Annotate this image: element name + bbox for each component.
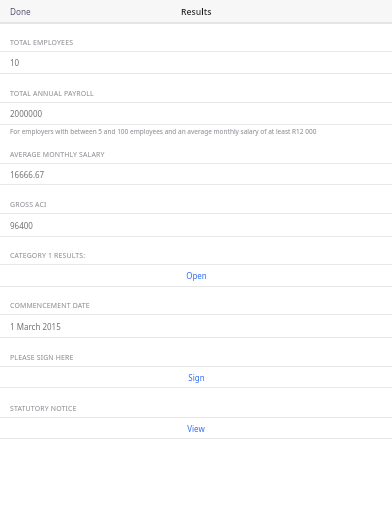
staticText: AVERAGE MONTHLY SALARY <box>10 150 105 159</box>
button[interactable]: Open <box>0 265 392 286</box>
staticText: TOTAL ANNUAL PAYROLL <box>10 89 94 98</box>
staticText: Results <box>181 6 212 18</box>
button[interactable]: View <box>0 418 392 438</box>
staticText: 1 March 2015 <box>10 321 61 332</box>
button[interactable]: 10 <box>0 52 392 73</box>
staticText: Open <box>186 270 207 281</box>
staticText: TOTAL EMPLOYEES <box>10 38 74 47</box>
staticText: CATEGORY 1 RESULTS: <box>10 251 86 260</box>
button[interactable]: Done <box>0 0 39 22</box>
button[interactable]: Sign <box>0 367 392 387</box>
staticText: 96400 <box>10 220 33 231</box>
button[interactable]: 96400 <box>0 214 392 236</box>
staticText: For employers with between 5 and 100 emp… <box>10 127 317 136</box>
staticText: 2000000 <box>10 108 43 119</box>
button[interactable]: 2000000 <box>0 103 392 124</box>
button[interactable]: 16666.67 <box>0 164 392 184</box>
staticText: COMMENCEMENT DATE <box>10 301 90 310</box>
staticText: Done <box>10 6 31 17</box>
staticText: View <box>187 423 205 434</box>
button[interactable]: 1 March 2015 <box>0 315 392 337</box>
staticText: 16666.67 <box>10 169 45 180</box>
staticText: 10 <box>10 57 20 68</box>
staticText: Sign <box>188 372 205 383</box>
staticText: PLEASE SIGN HERE <box>10 353 74 362</box>
staticText: GROSS ACI <box>10 200 47 209</box>
staticText: STATUTORY NOTICE <box>10 404 77 413</box>
